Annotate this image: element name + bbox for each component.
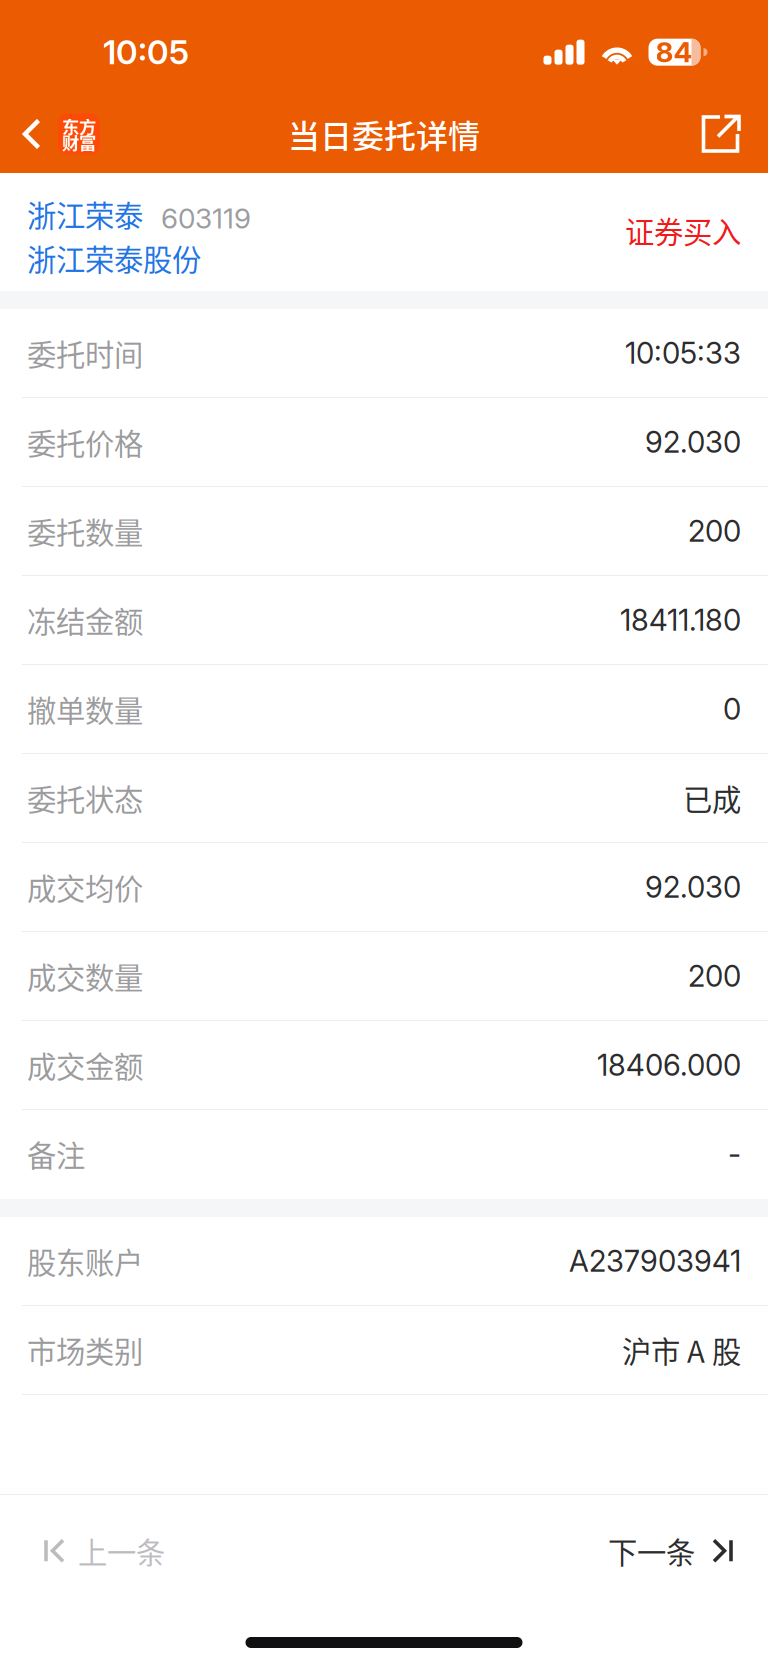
staticText: - (728, 1136, 741, 1172)
staticText: 下一条 (608, 1529, 695, 1572)
button[interactable]: Back (0, 95, 114, 173)
staticText: 浙江荣泰股份 (27, 237, 201, 279)
staticText: 成交均价 (27, 866, 143, 908)
staticText: 撤单数量 (27, 688, 143, 730)
staticText: 200 (688, 513, 741, 549)
button[interactable]: 成交均价 (0, 843, 768, 932)
staticText: 84 (655, 35, 692, 69)
staticText: 18411.180 (620, 602, 741, 638)
staticText: 10:05:33 (625, 335, 741, 371)
staticText: 上一条 (78, 1529, 165, 1572)
staticText: 0 (723, 691, 741, 727)
staticText: 证券买入 (625, 209, 741, 251)
staticText: 东方 (62, 113, 96, 139)
button[interactable]: 备注 (0, 1110, 768, 1199)
staticText: 18406.000 (597, 1047, 741, 1083)
staticText: 成交金额 (27, 1044, 143, 1086)
staticText: 92.030 (645, 869, 741, 905)
staticText: 浙江荣泰 (27, 193, 143, 235)
button[interactable]: 股东账户 (0, 1217, 768, 1306)
button[interactable]: 上一条 (0, 1495, 205, 1591)
button[interactable]: 成交数量 (0, 932, 768, 1021)
button[interactable]: Share (677, 95, 768, 173)
staticText: 603119 (161, 201, 251, 235)
button[interactable]: 成交金额 (0, 1021, 768, 1110)
staticText: 备注 (27, 1133, 85, 1175)
staticText: 股东账户 (27, 1240, 143, 1282)
button[interactable]: 委托状态 (0, 754, 768, 843)
button[interactable]: 委托数量 (0, 487, 768, 576)
staticText: 成交数量 (27, 955, 143, 997)
button[interactable]: 市场类别 (0, 1306, 768, 1395)
button[interactable]: 浙江荣泰 (27, 192, 251, 236)
button[interactable]: 撤单数量 (0, 665, 768, 754)
staticText: 沪市 A 股 (622, 1329, 741, 1371)
staticText: 委托价格 (27, 421, 143, 463)
staticText: 10:05 (103, 32, 189, 72)
staticText: 财富 (62, 129, 96, 155)
button[interactable]: 下一条 (568, 1495, 768, 1591)
staticText: 委托状态 (27, 777, 143, 819)
staticText: A237903941 (569, 1243, 741, 1279)
staticText: 冻结金额 (27, 599, 143, 641)
button[interactable]: 冻结金额 (0, 576, 768, 665)
staticText: 市场类别 (27, 1329, 143, 1371)
button[interactable]: 委托时间 (0, 309, 768, 398)
staticText: 当日委托详情 (288, 111, 480, 157)
staticText: 委托时间 (27, 332, 143, 374)
staticText: 200 (688, 958, 741, 994)
staticText: 92.030 (645, 424, 741, 460)
staticText: 委托数量 (27, 510, 143, 552)
button[interactable]: 浙江荣泰股份 (27, 236, 201, 280)
button[interactable]: 委托价格 (0, 398, 768, 487)
staticText: 已成 (683, 777, 741, 819)
